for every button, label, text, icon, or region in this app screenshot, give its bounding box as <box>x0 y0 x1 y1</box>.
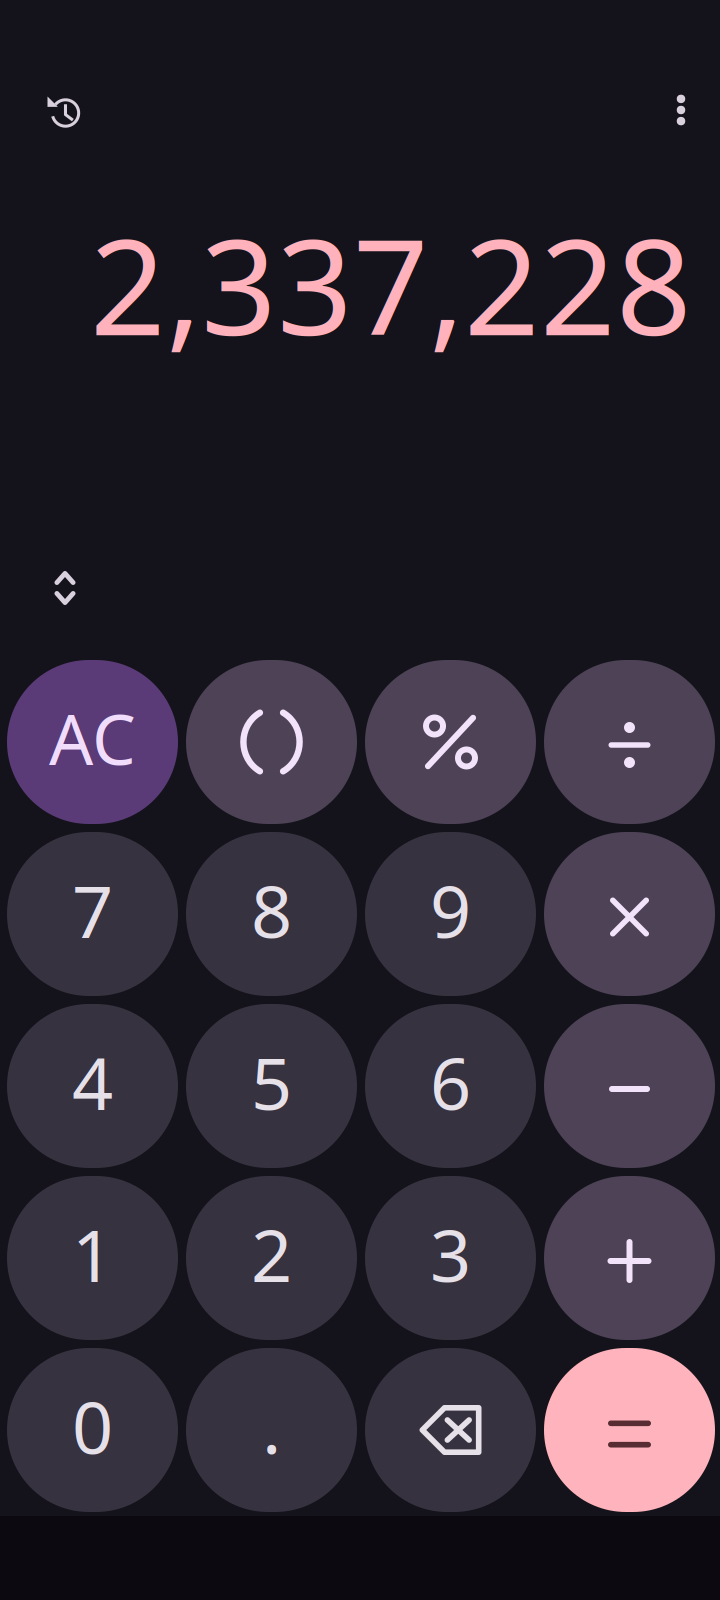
button[interactable]: Plus <box>544 1176 715 1340</box>
button[interactable]: 6 <box>365 1004 536 1168</box>
staticText: 6 <box>430 1034 471 1130</box>
button[interactable]: Minus <box>544 1004 715 1168</box>
staticText: 5 <box>251 1034 292 1130</box>
button[interactable]: Equals <box>544 1348 715 1512</box>
staticText: 2 <box>251 1206 292 1302</box>
button[interactable]: Divide <box>544 660 715 824</box>
button[interactable]: 0 <box>7 1348 178 1512</box>
button[interactable]: Percent <box>365 660 536 824</box>
staticText: 7 <box>72 862 113 958</box>
button[interactable]: 1 <box>7 1176 178 1340</box>
staticText: 3 <box>430 1206 471 1302</box>
button[interactable]: 4 <box>7 1004 178 1168</box>
button[interactable]: Expand <box>29 552 101 624</box>
button[interactable]: 3 <box>365 1176 536 1340</box>
button[interactable]: 2 <box>186 1176 357 1340</box>
button[interactable]: 8 <box>186 832 357 996</box>
button[interactable]: Multiply <box>544 832 715 996</box>
button[interactable]: History <box>16 65 112 161</box>
button[interactable]: 9 <box>365 832 536 996</box>
staticText: 8 <box>251 862 292 958</box>
button[interactable]: More options <box>633 62 720 158</box>
button[interactable]: AC <box>7 660 178 824</box>
staticText: 2,337,228 <box>90 196 692 372</box>
staticText: 4 <box>72 1034 113 1130</box>
staticText: . <box>262 1378 281 1474</box>
button[interactable]: 5 <box>186 1004 357 1168</box>
staticText: 1 <box>72 1206 113 1302</box>
button[interactable]: Parentheses <box>186 660 357 824</box>
button[interactable]: Backspace <box>365 1348 536 1512</box>
button[interactable]: 7 <box>7 832 178 996</box>
staticText: AC <box>49 692 136 784</box>
staticText: 0 <box>72 1378 113 1474</box>
staticText: 9 <box>430 862 471 958</box>
button[interactable]: . <box>186 1348 357 1512</box>
